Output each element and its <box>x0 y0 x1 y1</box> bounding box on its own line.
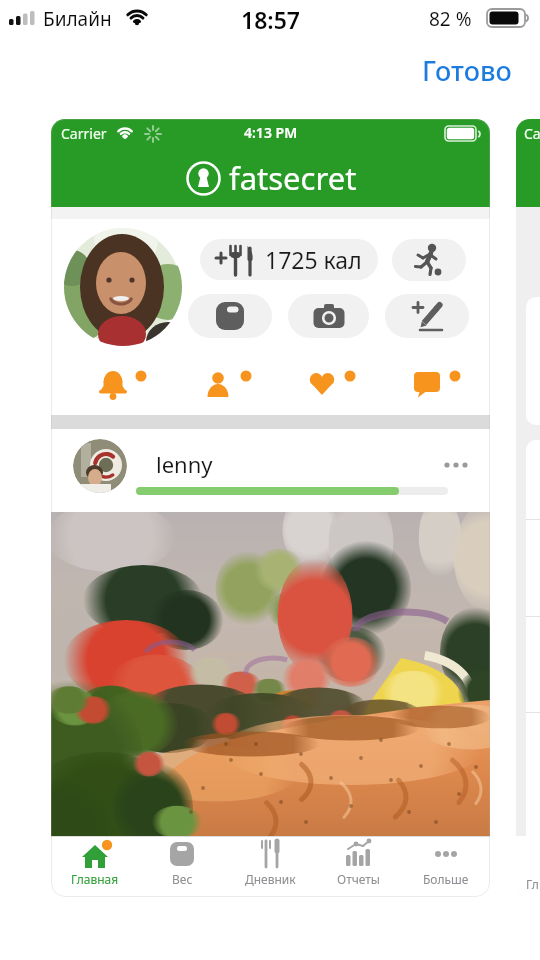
button[interactable]: lenny <box>51 429 490 512</box>
button[interactable] <box>288 294 369 338</box>
button[interactable]: Вес <box>138 837 226 897</box>
button[interactable] <box>297 359 359 405</box>
button[interactable] <box>443 459 473 471</box>
button[interactable] <box>392 239 466 281</box>
button[interactable]: Больше <box>402 837 490 897</box>
button[interactable]: Дневник <box>226 837 314 897</box>
staticText: Билайн <box>43 6 112 32</box>
staticText: 82 % <box>429 6 472 32</box>
staticText: Дневник <box>245 871 296 887</box>
staticText: Отчеты <box>337 871 380 887</box>
staticText: Carrier <box>61 124 107 143</box>
staticText: 4:13 PM <box>244 123 298 142</box>
button[interactable] <box>193 359 255 405</box>
staticText: 18:57 <box>241 4 300 35</box>
button[interactable]: Главная <box>51 837 138 897</box>
button[interactable]: Отчеты <box>314 837 402 897</box>
staticText: 1725 кал <box>265 244 362 275</box>
button[interactable] <box>402 359 464 405</box>
staticText: lenny <box>156 449 213 479</box>
button[interactable] <box>385 294 469 338</box>
staticText: Гл <box>526 876 539 892</box>
staticText: Вес <box>172 871 193 887</box>
staticText: Главная <box>71 871 119 887</box>
button[interactable] <box>88 359 150 405</box>
staticText: Больше <box>423 871 469 887</box>
staticText: Carrier <box>524 124 540 143</box>
staticText: fatsecret <box>229 157 357 199</box>
button[interactable]: Готово <box>422 52 512 89</box>
button[interactable]: 1725 кал <box>200 239 378 280</box>
button[interactable] <box>188 294 272 338</box>
